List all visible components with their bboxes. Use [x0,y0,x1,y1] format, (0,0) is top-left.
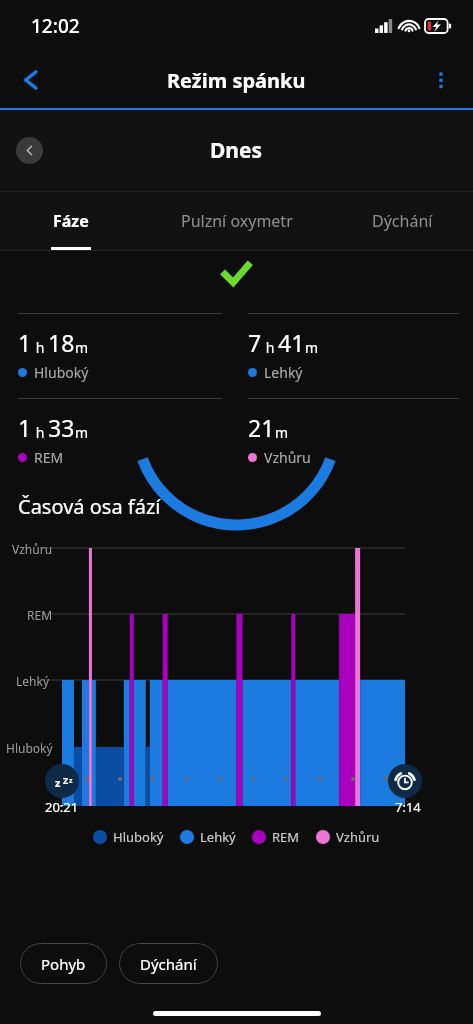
staticText: Časová osa fází [18,493,161,520]
staticText: z [55,775,61,790]
button[interactable]: Dýchání [332,192,473,250]
staticText: 1 [18,327,32,358]
staticText: m [305,338,319,357]
staticText: 7:14 [395,798,421,816]
staticText: h [262,338,278,357]
button[interactable]: Pulzní oxymetr [141,192,332,250]
staticText: Hluboký [6,740,53,756]
staticText: Režim spánku [167,67,306,94]
button[interactable]: Fáze [0,192,141,250]
staticText: m [275,423,289,442]
button[interactable]: Previous day [16,137,43,164]
staticText: 12:02 [31,13,80,39]
staticText: h [32,338,48,357]
staticText: Lehký [200,828,236,846]
staticText: 20:21 [45,798,79,816]
staticText: REM [34,448,64,467]
staticText: m [75,423,89,442]
staticText: Lehký [16,673,50,689]
staticText: 1 [18,412,32,443]
staticText: 33 [48,412,75,443]
button[interactable]: More options [419,58,463,102]
button[interactable]: Sleep start [45,764,79,798]
staticText: Vzhůru [264,448,311,467]
staticText: Z [63,774,69,786]
staticText: REM [27,607,53,623]
staticText: 41 [278,327,305,358]
button[interactable]: Alarm [388,764,422,798]
staticText: Vzhůru [336,828,380,846]
staticText: m [75,338,89,357]
staticText: Fáze [53,210,89,232]
button[interactable]: Pohyb [20,943,107,984]
staticText: Hluboký [113,828,164,846]
staticText: Pulzní oxymetr [181,210,293,232]
staticText: REM [272,828,300,846]
staticText: Dnes [210,136,263,165]
staticText: Lehký [264,363,303,382]
staticText: Dýchání [140,954,197,974]
staticText: 18 [48,327,75,358]
staticText: 21 [248,412,275,443]
staticText: Hluboký [34,363,89,382]
staticText: Pohyb [41,954,86,974]
button[interactable]: Back [8,56,56,104]
staticText: h [32,423,48,442]
staticText: Vzhůru [12,541,53,557]
button[interactable]: Dýchání [119,943,218,984]
staticText: Dýchání [372,210,433,232]
staticText: z [69,776,73,786]
staticText: 7 [248,327,262,358]
